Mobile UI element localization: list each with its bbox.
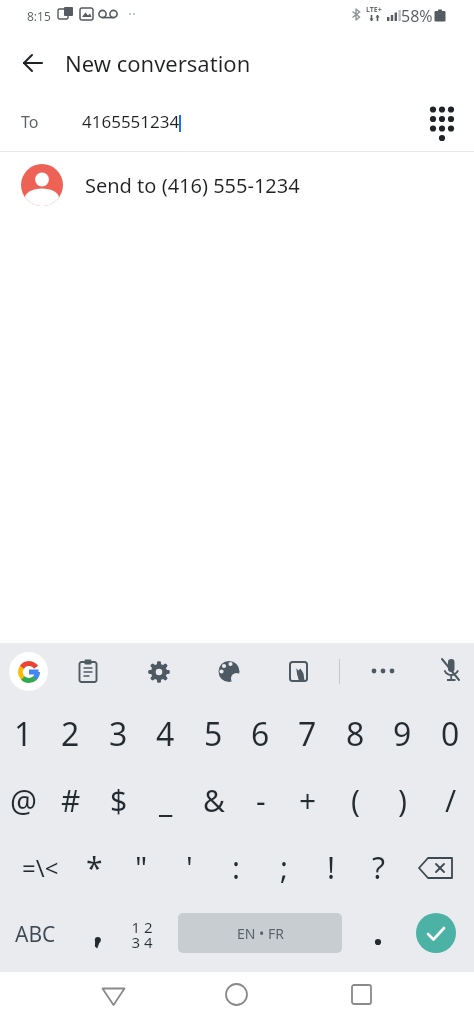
staticText: 0 [441,712,460,756]
button[interactable] [137,649,181,693]
staticText: @ [10,780,37,821]
button[interactable] [207,649,251,693]
button[interactable]: 4 [142,700,189,767]
button[interactable]: ( [332,767,379,834]
staticText: $ [110,780,128,821]
staticText: 8:15 [27,8,51,24]
staticText: ! [327,847,336,888]
button[interactable]: : [213,834,260,901]
staticText: LTE+ [366,5,382,15]
button[interactable]: =\< [9,834,71,901]
staticText: New conversation [65,48,251,78]
button[interactable] [76,901,123,968]
staticText: _ [159,780,173,821]
button[interactable]: " [118,834,165,901]
button[interactable]: ; [261,834,308,901]
button[interactable] [429,649,473,693]
staticText: 7 [298,712,317,756]
button[interactable]: @ [0,767,47,834]
staticText: ) [398,780,407,821]
button[interactable]: + [284,767,331,834]
button[interactable]: 8 [332,700,379,767]
staticText: To [21,111,39,133]
staticText: 4165551234 [82,110,180,133]
button[interactable]: ABC [4,901,66,968]
button[interactable]: 6 [237,700,284,767]
staticText: 1 [14,712,33,756]
staticText: ' [186,847,193,888]
staticText: 4 [156,712,175,756]
button[interactable]: EN • FR [178,913,342,953]
button[interactable]: To [0,96,474,151]
staticText: 3 [109,712,128,756]
staticText: 2 [61,712,80,756]
button[interactable] [416,913,456,953]
staticText: / [445,780,457,821]
button[interactable]: 1 [0,700,47,767]
button[interactable]: ) [379,767,426,834]
staticText: " [135,847,148,888]
button[interactable]: 3 [95,700,142,767]
button[interactable] [66,649,110,693]
button[interactable]: 1 2 3 4 [118,901,165,968]
button[interactable]: 9 [379,700,426,767]
button[interactable] [403,834,465,901]
staticText: =\< [22,851,59,884]
button[interactable]: ? [355,834,402,901]
staticText: ; [280,847,289,888]
button[interactable] [355,901,402,968]
button[interactable]: / [427,767,474,834]
button[interactable]: ! [308,834,355,901]
button[interactable] [214,972,259,1017]
button[interactable]: & [190,767,237,834]
staticText: & [203,780,225,821]
staticText: EN • FR [237,924,284,943]
button[interactable]: 2 [47,700,94,767]
staticText: 1 2 3 4 [131,917,153,952]
staticText: : [232,847,241,888]
button[interactable]: Send to (416) 555-1234 [0,152,474,218]
staticText: 6 [251,712,270,756]
staticText: # [61,780,81,821]
staticText: - [256,780,266,821]
button[interactable] [339,972,384,1017]
staticText: 58% [401,5,433,27]
staticText: * [86,847,103,888]
button[interactable]: 5 [190,700,237,767]
staticText: ( [351,780,360,821]
staticText: 5 [204,712,223,756]
button[interactable] [91,974,136,1019]
button[interactable]: ' [166,834,213,901]
button[interactable]: _ [142,767,189,834]
staticText: ABC [15,920,56,949]
button[interactable] [361,649,405,693]
staticText: 8 [346,712,365,756]
button[interactable]: 0 [427,700,474,767]
button[interactable] [9,652,48,691]
button[interactable] [420,101,464,145]
button[interactable] [14,44,52,82]
button[interactable]: * [71,834,118,901]
staticText: 9 [393,712,412,756]
staticText: Send to (416) 555-1234 [85,172,300,199]
button[interactable] [277,649,321,693]
button[interactable]: 7 [284,700,331,767]
staticText: + [299,780,317,821]
button[interactable]: $ [95,767,142,834]
button[interactable]: - [237,767,284,834]
staticText: ? [372,847,386,888]
button[interactable]: # [47,767,94,834]
